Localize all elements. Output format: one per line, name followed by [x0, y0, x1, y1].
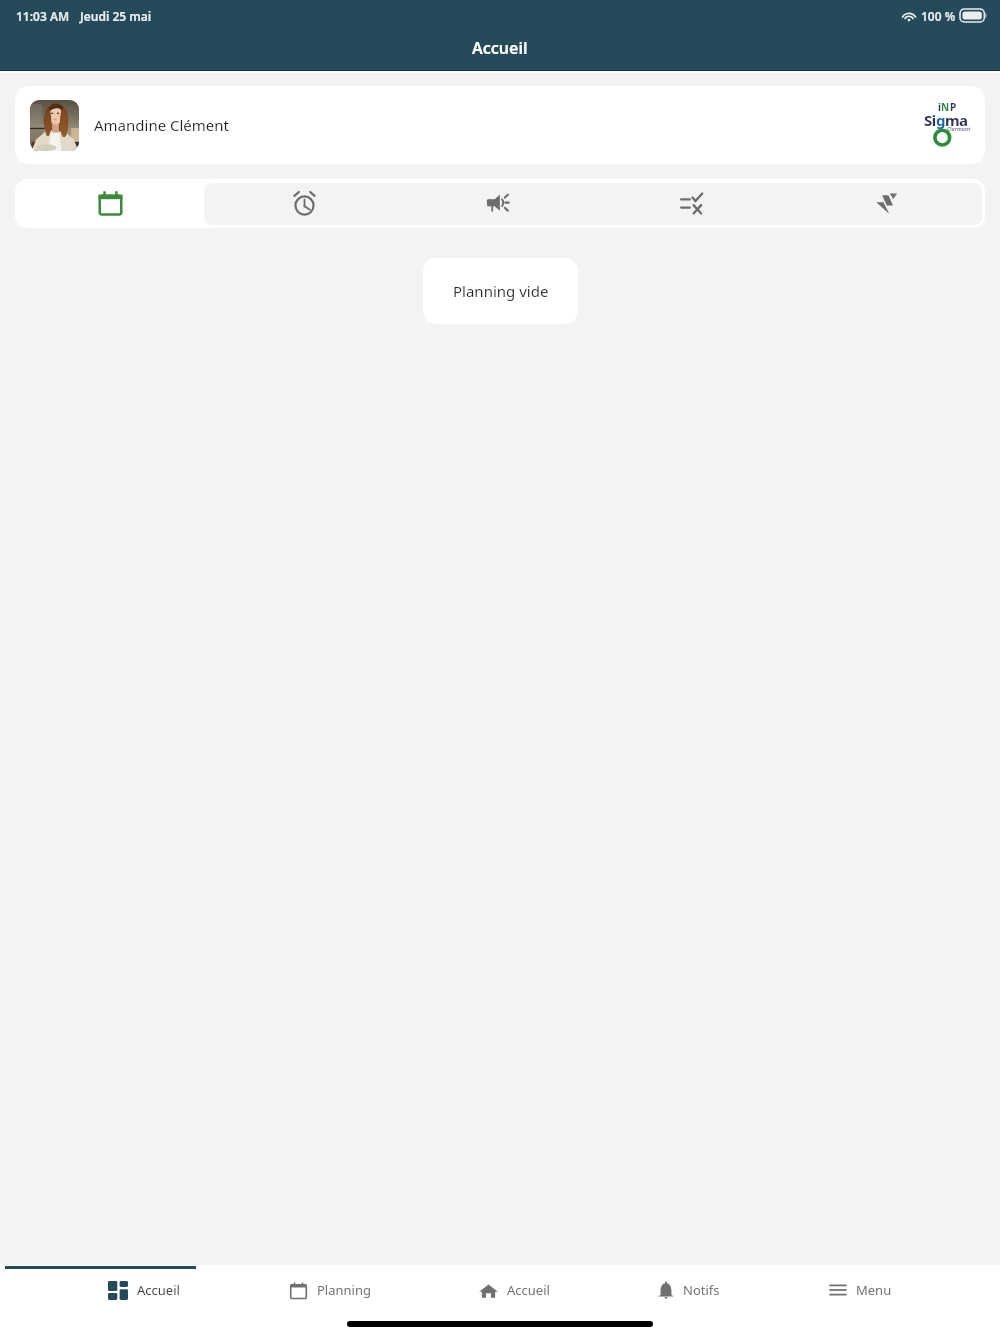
staticText: Amandine Clément: [94, 115, 230, 135]
staticText: Notifs: [683, 1281, 720, 1299]
button[interactable]: Menu: [829, 1270, 892, 1310]
staticText: g: [936, 110, 945, 130]
button[interactable]: Planning vide: [423, 258, 578, 324]
button[interactable]: Notifs: [658, 1270, 720, 1310]
button[interactable]: Accueil: [108, 1270, 180, 1310]
staticText: ma: [945, 110, 967, 130]
button[interactable]: Planning: [15, 179, 209, 228]
staticText: Clermont: [947, 126, 971, 133]
staticText: Accueil: [137, 1281, 180, 1299]
button[interactable]: Vie etudiante: [791, 179, 985, 228]
button[interactable]: Annonces: [403, 179, 597, 228]
staticText: Si: [924, 110, 936, 130]
staticText: N: [941, 100, 950, 114]
button[interactable]: Horaires: [209, 179, 403, 228]
staticText: Menu: [856, 1281, 892, 1299]
staticText: Jeudi 25 mai: [80, 8, 152, 24]
button[interactable]: Amandine Clément: [15, 86, 985, 164]
staticText: Planning: [317, 1281, 371, 1299]
staticText: i: [938, 100, 941, 114]
button[interactable]: Accueil: [479, 1270, 550, 1310]
staticText: Accueil: [507, 1281, 550, 1299]
staticText: 11:03 AM: [16, 8, 70, 24]
staticText: 100 %: [921, 8, 956, 24]
button[interactable]: Planning: [289, 1270, 371, 1310]
staticText: Accueil: [472, 37, 528, 59]
staticText: Planning vide: [453, 281, 549, 301]
button[interactable]: Absences: [597, 179, 791, 228]
staticText: P: [950, 100, 957, 114]
